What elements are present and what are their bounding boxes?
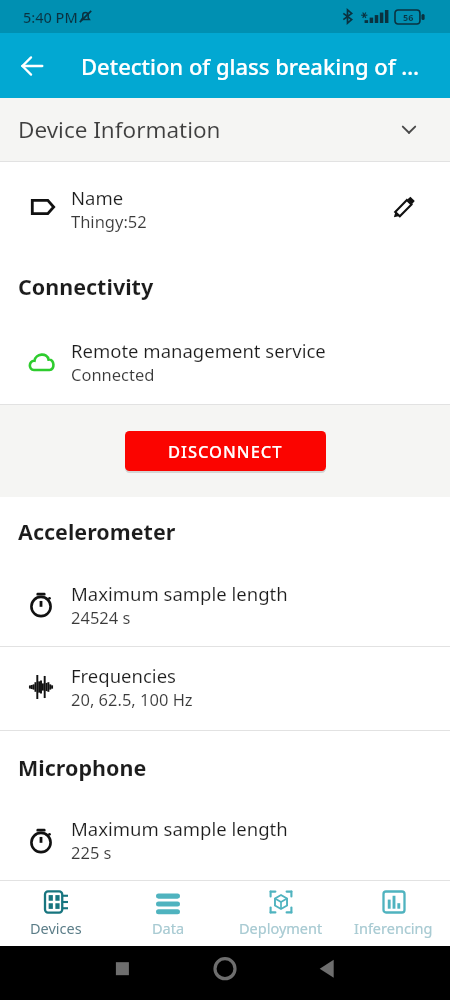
staticText: Accelerometer xyxy=(18,517,176,546)
button[interactable]: Maximum sample length xyxy=(0,566,450,646)
staticText: Inferencing xyxy=(354,918,433,938)
staticText: 20, 62.5, 100 Hz xyxy=(71,688,193,710)
button[interactable]: Remote management service xyxy=(0,325,450,404)
button[interactable]: DISCONNECT xyxy=(125,431,326,471)
staticText: Maximum sample length xyxy=(71,816,288,841)
staticText: Devices xyxy=(30,918,82,938)
staticText: 56 xyxy=(403,11,414,23)
staticText: Detection of glass breaking of … xyxy=(81,51,420,81)
staticText: Microphone xyxy=(18,753,147,782)
button[interactable]: Name xyxy=(0,162,450,248)
staticText: Device Information xyxy=(18,114,221,145)
staticText: Connected xyxy=(71,363,155,385)
staticText: 225 s xyxy=(71,841,112,863)
button[interactable]: Maximum sample length xyxy=(0,804,450,879)
button[interactable]: Edit name xyxy=(386,187,422,223)
staticText: Frequencies xyxy=(71,663,176,688)
button[interactable]: Data xyxy=(112,881,224,946)
staticText: Thingy:52 xyxy=(71,210,147,232)
staticText: DISCONNECT xyxy=(168,440,283,462)
staticText: Data xyxy=(152,918,185,938)
staticText: Connectivity xyxy=(18,272,154,301)
staticText: Remote management service xyxy=(71,338,326,363)
button[interactable]: Deployment xyxy=(224,881,337,946)
staticText: 5:40 PM xyxy=(23,7,78,27)
button[interactable]: Devices xyxy=(0,881,112,946)
staticText: Name xyxy=(71,185,124,210)
staticText: Deployment xyxy=(239,918,323,938)
staticText: Maximum sample length xyxy=(71,581,288,606)
button[interactable]: Inferencing xyxy=(337,881,450,946)
button[interactable]: Device Information xyxy=(0,98,450,161)
button[interactable]: Back xyxy=(13,47,51,85)
button[interactable]: Frequencies xyxy=(0,647,450,730)
staticText: 24524 s xyxy=(71,606,131,628)
